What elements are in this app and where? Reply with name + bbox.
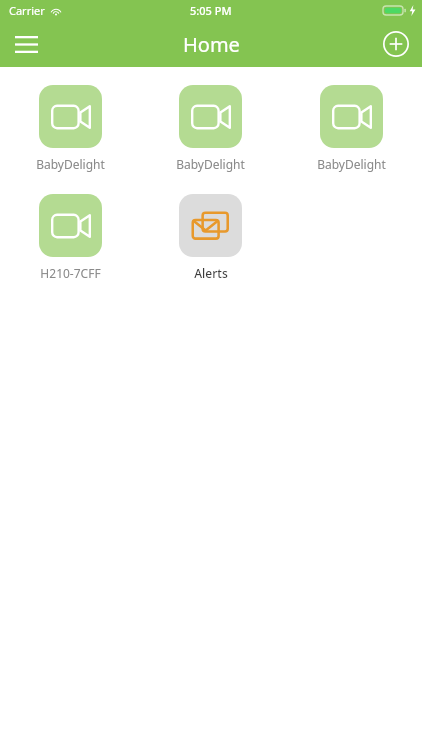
button[interactable]: Add (370, 21, 422, 67)
staticText: Home (183, 31, 240, 58)
staticText: Carrier (9, 3, 45, 18)
staticText: Alerts (194, 265, 228, 281)
staticText: BabyDelight (176, 156, 245, 172)
button[interactable]: BabyDelight (0, 85, 140, 172)
button[interactable]: BabyDelight (140, 85, 281, 172)
button[interactable]: BabyDelight (281, 85, 422, 172)
button[interactable]: Menu (0, 21, 52, 67)
button[interactable]: Alerts (140, 194, 281, 281)
staticText: BabyDelight (36, 156, 105, 172)
staticText: 5:05 PM (190, 3, 232, 18)
button[interactable]: H210-7CFF (0, 194, 140, 281)
staticText: H210-7CFF (40, 265, 101, 281)
staticText: BabyDelight (317, 156, 386, 172)
